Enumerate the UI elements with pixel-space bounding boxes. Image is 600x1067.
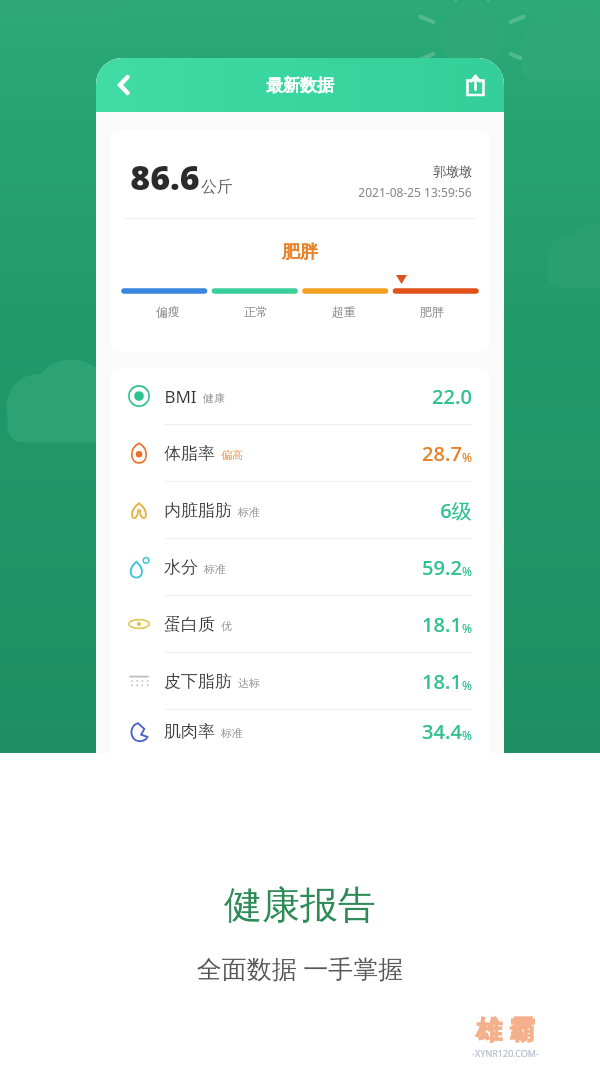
button[interactable]: 蛋白质 [128, 596, 472, 652]
button[interactable]: Share [454, 64, 496, 106]
button[interactable]: BMI [128, 368, 472, 424]
staticText: 偏瘦 [124, 304, 212, 319]
staticText: 健康报告 [0, 881, 600, 929]
staticText: 全面数据 一手掌握 [0, 951, 600, 985]
staticText: 体脂率 [164, 443, 215, 464]
staticText: 2021-08-25 13:59:56 [358, 184, 472, 200]
staticText: % [462, 449, 472, 465]
staticText: 86.6 [130, 154, 200, 200]
button[interactable]: 肌肉率 [128, 710, 472, 753]
staticText: 蛋白质 [164, 614, 215, 635]
staticText: 偏高 [221, 448, 243, 462]
staticText: 正常 [212, 304, 300, 319]
staticText: 6级 [440, 497, 472, 524]
staticText: 28.7 [422, 440, 462, 467]
staticText: 超重 [300, 304, 388, 319]
staticText: 雄 霸 [476, 1011, 535, 1047]
staticText: 达标 [238, 676, 260, 690]
staticText: 优 [221, 619, 232, 633]
button[interactable]: 皮下脂肪 [128, 653, 472, 709]
staticText: 22.0 [432, 383, 472, 410]
button[interactable]: Back [102, 63, 146, 107]
staticText: 18.1 [422, 611, 462, 638]
button[interactable]: 水分 [128, 539, 472, 595]
staticText: 最新数据 [266, 75, 334, 96]
staticText: 郭墩墩 [433, 163, 472, 179]
staticText: 公斤 [201, 177, 233, 197]
staticText: 标准 [204, 562, 226, 576]
staticText: 水分 [164, 557, 198, 578]
staticText: % [462, 563, 472, 579]
staticText: % [462, 620, 472, 636]
staticText: 59.2 [422, 554, 462, 581]
staticText: BMI [164, 385, 197, 408]
staticText: 18.1 [422, 668, 462, 695]
button[interactable]: 内脏脂肪 [128, 482, 472, 538]
staticText: 肥胖 [110, 241, 490, 264]
staticText: 标准 [238, 505, 260, 519]
button[interactable]: 体脂率 [128, 425, 472, 481]
staticText: 34.4 [422, 718, 462, 745]
staticText: 肌肉率 [164, 721, 215, 742]
staticText: 健康 [203, 391, 225, 405]
staticText: 肥胖 [388, 304, 476, 319]
staticText: -XYNR120.COM- [472, 1047, 539, 1059]
staticText: 内脏脂肪 [164, 500, 232, 521]
staticText: 皮下脂肪 [164, 671, 232, 692]
staticText: % [462, 677, 472, 693]
staticText: % [462, 727, 472, 743]
staticText: 标准 [221, 726, 243, 740]
